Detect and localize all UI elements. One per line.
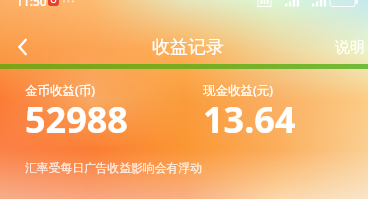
staticText: 说明: [335, 38, 365, 57]
staticText: 11:50: [16, 0, 47, 9]
staticText: 现金收益(元): [203, 82, 274, 99]
staticText: 金币收益(币): [25, 82, 96, 99]
button[interactable]: Back: [3, 27, 43, 67]
staticText: 汇率受每日广告收益影响会有浮动: [25, 161, 202, 176]
staticText: 13.64: [203, 95, 296, 144]
staticText: 52988: [25, 95, 128, 144]
staticText: 收益记录: [152, 36, 224, 59]
button[interactable]: 说明: [325, 30, 368, 65]
